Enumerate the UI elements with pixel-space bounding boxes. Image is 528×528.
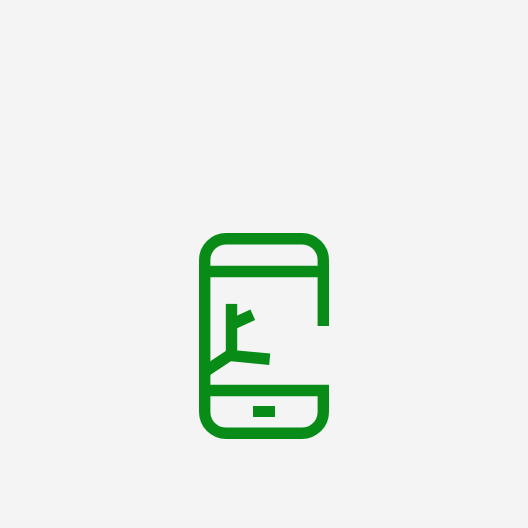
button[interactable]: Broken phone [0,0,528,528]
